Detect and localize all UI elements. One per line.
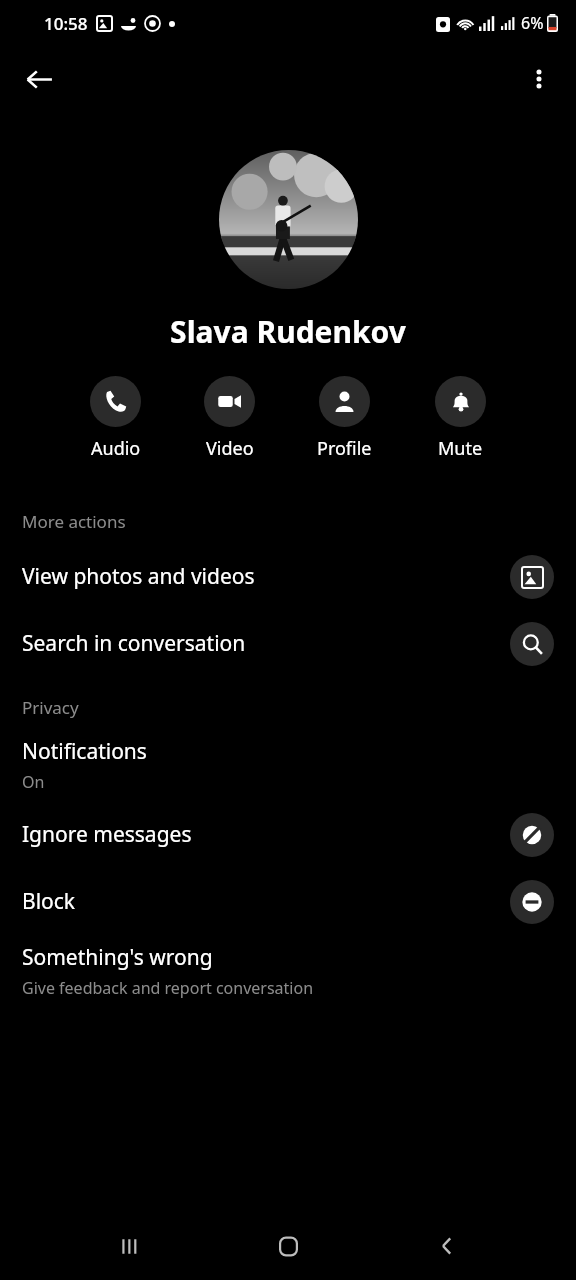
staticText: Video bbox=[206, 436, 254, 461]
staticText: Something's wrong bbox=[22, 943, 213, 972]
button[interactable]: Search in conversation bbox=[0, 610, 576, 677]
button[interactable]: Block bbox=[0, 868, 576, 935]
staticText: Mute bbox=[438, 436, 483, 461]
button[interactable]: Profile bbox=[313, 376, 376, 461]
button[interactable]: Search in conversation bbox=[510, 622, 554, 666]
staticText: Ignore messages bbox=[22, 820, 192, 849]
button[interactable]: Audio bbox=[86, 376, 145, 461]
staticText: More actions bbox=[22, 510, 126, 533]
button[interactable]: Profile photo bbox=[219, 150, 358, 289]
button[interactable]: Something's wrong bbox=[0, 935, 576, 1007]
staticText: Block bbox=[22, 887, 76, 916]
staticText: Privacy bbox=[22, 696, 79, 719]
staticText: Profile bbox=[317, 436, 372, 461]
staticText: Give feedback and report conversation bbox=[22, 977, 314, 999]
button[interactable]: Video bbox=[200, 376, 259, 461]
button[interactable]: More options bbox=[514, 54, 564, 104]
button[interactable]: View photos and videos bbox=[510, 555, 554, 599]
staticText: Search in conversation bbox=[22, 629, 246, 658]
staticText: Audio bbox=[91, 436, 141, 461]
button[interactable]: Back bbox=[14, 54, 64, 104]
button[interactable]: Home bbox=[258, 1216, 318, 1276]
staticText: On bbox=[22, 771, 45, 793]
staticText: 6% bbox=[521, 12, 544, 34]
button[interactable]: Notifications bbox=[0, 729, 576, 801]
button[interactable]: Recents bbox=[99, 1216, 159, 1276]
staticText: Slava Rudenkov bbox=[0, 311, 576, 352]
button[interactable]: Block bbox=[510, 880, 554, 924]
staticText: 10:58 bbox=[44, 12, 88, 35]
button[interactable]: View photos and videos bbox=[0, 543, 576, 610]
button[interactable]: Ignore messages bbox=[510, 813, 554, 857]
button[interactable]: Ignore messages bbox=[0, 801, 576, 868]
staticText: Notifications bbox=[22, 737, 147, 766]
button[interactable]: Mute bbox=[431, 376, 490, 461]
button[interactable]: Back bbox=[417, 1216, 477, 1276]
staticText: View photos and videos bbox=[22, 562, 255, 591]
